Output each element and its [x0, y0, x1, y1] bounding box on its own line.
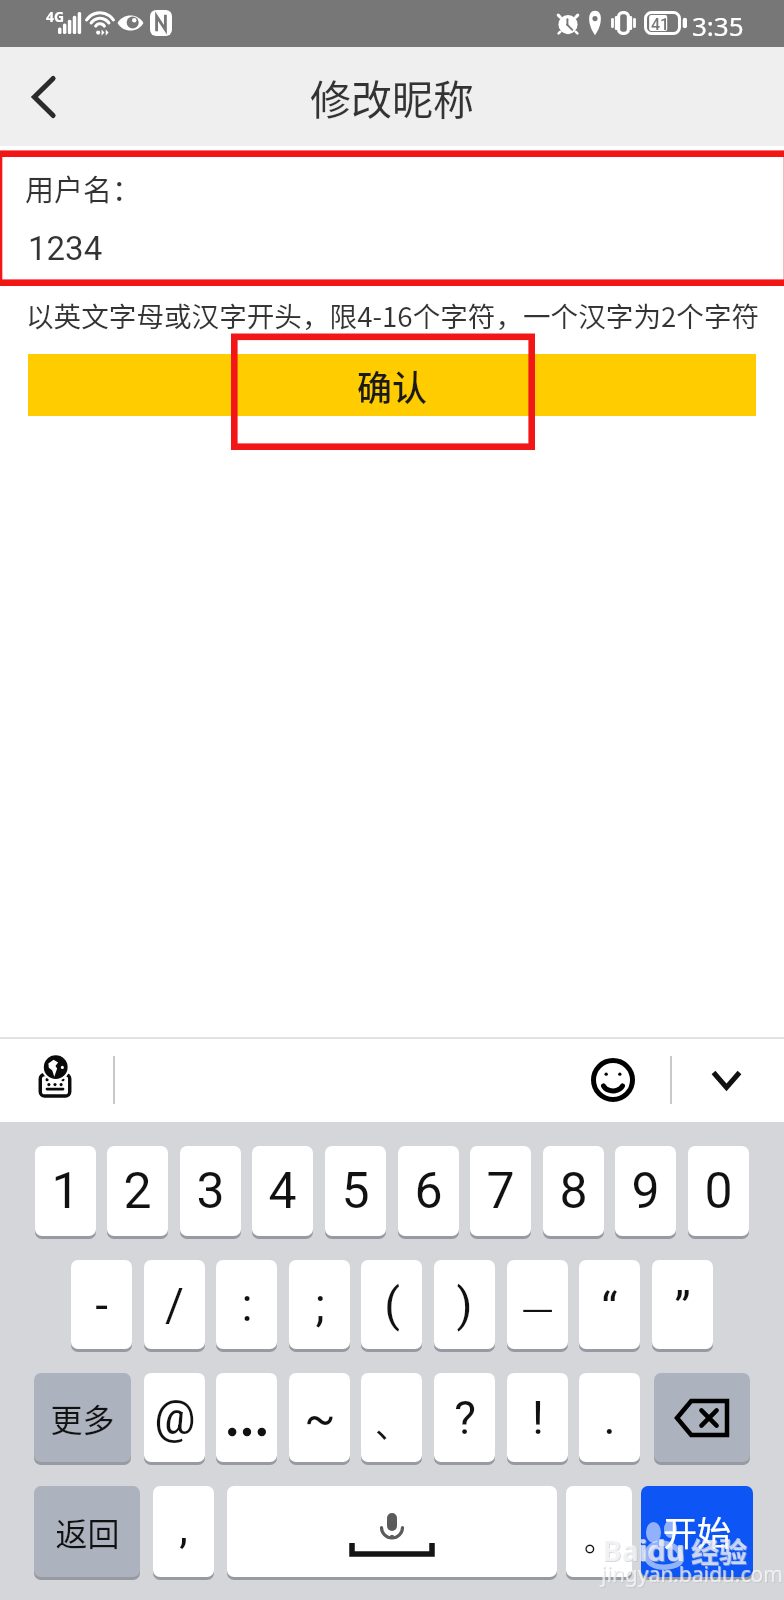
staticText: -: [95, 1278, 108, 1332]
staticText: ?: [454, 1391, 476, 1445]
staticText: 开始: [663, 1507, 731, 1556]
button[interactable]: 1: [35, 1146, 96, 1236]
staticText: 用户名：: [25, 167, 142, 209]
staticText: 3: [196, 1162, 225, 1221]
button[interactable]: 返回: [34, 1486, 140, 1577]
staticText: 5: [341, 1162, 370, 1221]
staticText: 更多: [50, 1395, 115, 1441]
button[interactable]: Emoji: [580, 1047, 646, 1113]
button[interactable]: Space: [227, 1486, 557, 1577]
staticText: 确认: [357, 360, 428, 411]
staticText: 经验: [692, 1532, 749, 1573]
button[interactable]: Switch input language: [22, 1047, 88, 1113]
button[interactable]: 8: [543, 1146, 604, 1236]
button[interactable]: 4: [252, 1146, 313, 1236]
button[interactable]: 开始: [641, 1486, 753, 1577]
staticText: Baidu: [603, 1531, 686, 1570]
staticText: 、: [375, 1399, 409, 1448]
button[interactable]: ): [434, 1260, 495, 1349]
staticText: :: [241, 1278, 253, 1332]
staticText: —: [521, 1279, 554, 1331]
button[interactable]: 。: [566, 1486, 632, 1577]
button[interactable]: 用户名：: [0, 151, 784, 287]
button[interactable]: 7: [470, 1146, 531, 1236]
button[interactable]: 5: [325, 1146, 386, 1236]
button[interactable]: 0: [688, 1146, 749, 1236]
staticText: .: [603, 1391, 616, 1445]
button[interactable]: ?: [434, 1373, 495, 1462]
staticText: Baidu: [602, 1530, 685, 1569]
button[interactable]: ;: [289, 1260, 350, 1349]
staticText: 6: [414, 1162, 443, 1221]
button[interactable]: Hide keyboard: [693, 1047, 759, 1113]
button[interactable]: @: [144, 1373, 205, 1462]
staticText: ): [456, 1278, 473, 1332]
staticText: 4G: [46, 7, 65, 26]
button[interactable]: —: [507, 1260, 568, 1349]
staticText: 1: [51, 1162, 80, 1221]
staticText: ”: [674, 1282, 691, 1336]
button[interactable]: /: [144, 1260, 205, 1349]
staticText: ,: [179, 1502, 188, 1554]
button[interactable]: 、: [361, 1373, 422, 1462]
button[interactable]: ,: [153, 1486, 214, 1577]
staticText: ~: [304, 1391, 336, 1445]
staticText: 2: [123, 1162, 152, 1221]
staticText: 修改昵称: [310, 67, 474, 126]
button[interactable]: .: [579, 1373, 640, 1462]
staticText: 以英文字母或汉字开头，限4-16个字符，一个汉字为2个字符: [26, 295, 760, 335]
button[interactable]: 2: [107, 1146, 168, 1236]
staticText: 7: [486, 1162, 515, 1221]
staticText: ;: [315, 1278, 325, 1332]
staticText: !: [532, 1391, 544, 1445]
button[interactable]: 3: [180, 1146, 241, 1236]
button[interactable]: -: [71, 1260, 132, 1349]
staticText: 9: [631, 1162, 660, 1221]
staticText: @: [154, 1391, 196, 1445]
button[interactable]: !: [507, 1373, 568, 1462]
staticText: 1234: [28, 229, 103, 268]
staticText: 3:35: [692, 8, 744, 43]
staticText: “: [601, 1282, 618, 1336]
button[interactable]: (: [361, 1260, 422, 1349]
staticText: /: [165, 1278, 184, 1332]
button[interactable]: 确认: [28, 354, 756, 416]
button[interactable]: ”: [652, 1260, 713, 1349]
staticText: 4: [268, 1162, 297, 1221]
staticText: jingyan.baidu.com: [601, 1560, 783, 1589]
button[interactable]: Back: [0, 47, 88, 146]
button[interactable]: Ellipsis: [216, 1373, 277, 1462]
button[interactable]: ~: [289, 1373, 350, 1462]
staticText: (: [384, 1278, 400, 1332]
staticText: 41: [651, 15, 670, 34]
staticText: 返回: [55, 1509, 120, 1555]
staticText: jingyan.baidu.com: [602, 1561, 784, 1590]
button[interactable]: 更多: [34, 1373, 131, 1462]
staticText: 0: [704, 1162, 733, 1221]
button[interactable]: “: [579, 1260, 640, 1349]
button[interactable]: 9: [615, 1146, 676, 1236]
staticText: 经验: [691, 1531, 748, 1572]
button[interactable]: :: [216, 1260, 277, 1349]
button[interactable]: Backspace: [654, 1373, 750, 1462]
staticText: 。: [584, 1516, 614, 1559]
staticText: 8: [559, 1162, 588, 1221]
button[interactable]: 6: [398, 1146, 459, 1236]
